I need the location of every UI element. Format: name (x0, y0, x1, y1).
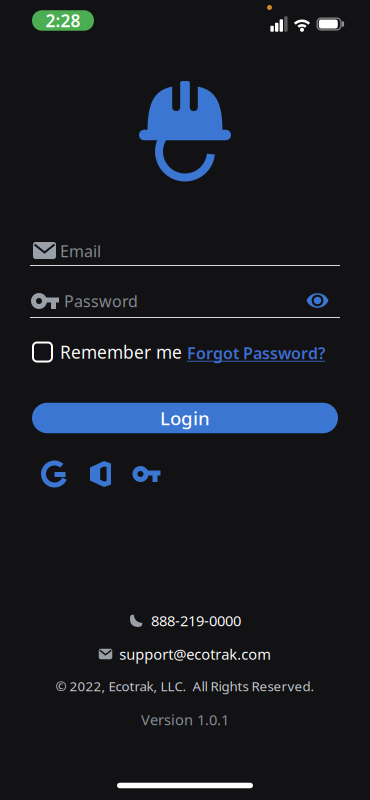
button[interactable]: 888-219-0000 (129, 611, 241, 630)
staticText: Password (64, 290, 138, 312)
button[interactable]: support@ecotrak.com (99, 644, 271, 664)
button[interactable]: Sign in with SSO key (132, 466, 160, 482)
button[interactable]: Remember me (33, 340, 182, 363)
staticText: Forgot Password? (187, 342, 325, 364)
button[interactable]: Forgot Password? (187, 342, 325, 364)
staticText: 2:28 (45, 9, 80, 32)
staticText: Login (160, 406, 210, 430)
staticText: Email (60, 240, 101, 262)
staticText: © 2022, Ecotrak, LLC. All Rights Reserve… (55, 677, 314, 695)
staticText: support@ecotrak.com (119, 644, 271, 664)
staticText: Remember me (60, 340, 182, 363)
button[interactable]: Sign in with Microsoft (90, 461, 111, 487)
button[interactable]: Show password (306, 293, 328, 308)
button[interactable]: Sign in with Google (43, 460, 66, 487)
staticText: Version 1.0.1 (141, 710, 229, 729)
button[interactable]: Login (32, 403, 338, 433)
staticText: 888-219-0000 (151, 611, 241, 630)
